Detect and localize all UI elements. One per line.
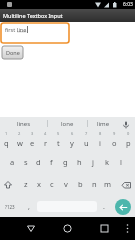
staticText: Done [6,49,20,56]
button[interactable]: 8 [93,130,107,152]
staticText: j [92,157,94,167]
button[interactable] [110,196,135,217]
staticText: line [17,26,27,33]
staticText: 6:03 [123,1,133,8]
staticText: s [24,157,28,167]
button[interactable]: n [87,174,101,196]
staticText: q [4,138,9,148]
staticText: t [57,138,60,148]
button[interactable]: lime [88,117,118,130]
button[interactable]: f [45,152,58,174]
button[interactable] [115,174,135,196]
staticText: 5 [57,131,60,136]
staticText: f [50,157,53,167]
button[interactable]: m [101,174,115,196]
staticText: e [30,138,35,148]
staticText: p [126,138,131,148]
staticText: , [28,202,30,212]
button[interactable]: a [6,152,19,174]
staticText: Multiline Textbox Input [3,12,63,19]
staticText: 0 [127,131,130,136]
button[interactable]: l [114,152,128,174]
button[interactable]: b [73,174,87,196]
button[interactable]: lines [0,117,47,130]
staticText: u [84,138,89,148]
staticText: i [99,138,101,148]
button[interactable]: h [72,152,86,174]
button[interactable]: first [1,23,69,43]
staticText: k [105,157,110,167]
staticText: g [63,157,68,167]
button[interactable]: v [59,174,73,196]
button[interactable]: , [20,196,37,217]
button[interactable] [60,224,75,234]
staticText: h [77,157,82,167]
staticText: 2 [18,131,21,136]
staticText: 9 [113,131,116,136]
staticText: d [36,157,41,167]
button[interactable]: 6 [65,130,79,152]
staticText: o [112,138,117,148]
staticText: r [44,138,48,148]
staticText: 4 [44,131,47,136]
staticText: first [5,26,17,33]
staticText: lime [97,120,110,128]
button[interactable]: 1 [0,130,13,152]
staticText: 7 [85,131,88,136]
staticText: 1 [5,131,8,136]
button[interactable] [0,174,19,196]
staticText: lone [61,120,74,128]
staticText: m [104,179,112,189]
staticText: v [64,179,68,189]
button[interactable]: 7 [79,130,93,152]
staticText: 8 [99,131,102,136]
button[interactable]: Done [2,46,23,59]
staticText: . [103,202,105,212]
staticText: y [70,138,74,148]
button[interactable] [97,224,112,234]
staticText: lines [17,120,31,128]
button[interactable]: 9 [107,130,121,152]
button[interactable]: ?123 [0,196,20,217]
staticText: n [92,179,97,189]
staticText: c [50,179,54,189]
button[interactable]: 0 [121,130,135,152]
staticText: l [120,157,122,167]
button[interactable]: j [86,152,100,174]
button[interactable] [24,225,38,233]
button[interactable]: . [97,196,110,217]
button[interactable]: 4 [39,130,52,152]
button[interactable]: 5 [52,130,65,152]
staticText: a [10,157,15,167]
button[interactable]: x [32,174,45,196]
button[interactable]: c [45,174,59,196]
staticText: z [24,179,28,189]
button[interactable]: k [100,152,114,174]
button[interactable]: z [19,174,32,196]
button[interactable]: lone [48,117,87,130]
button[interactable] [122,223,133,235]
button[interactable] [118,117,135,130]
button[interactable]: s [19,152,32,174]
staticText: 6 [71,131,74,136]
button[interactable]: d [32,152,45,174]
staticText: 3 [31,131,34,136]
button[interactable]: g [58,152,72,174]
staticText: ?123 [5,204,15,210]
button[interactable]: 2 [13,130,26,152]
staticText: b [78,179,83,189]
button[interactable]: 3 [26,130,39,152]
staticText: w [17,138,23,148]
staticText: x [37,179,41,189]
